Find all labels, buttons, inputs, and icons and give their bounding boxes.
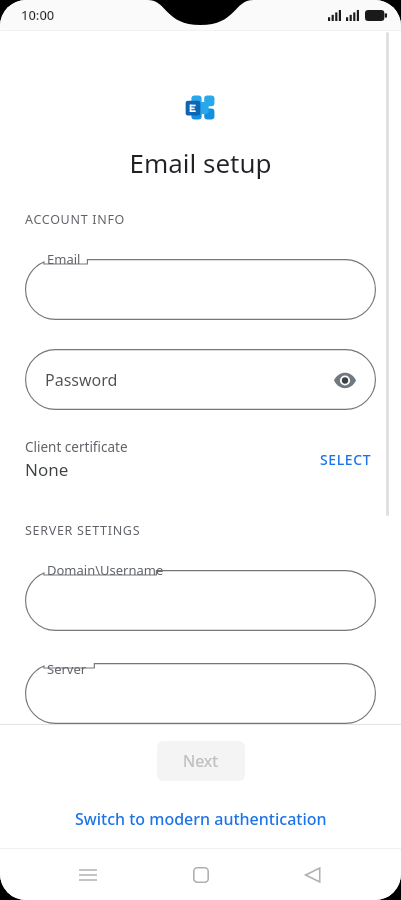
button[interactable]: Back [289, 851, 337, 899]
button[interactable]: Client certificate [25, 435, 376, 483]
staticText: ACCOUNT INFO [25, 211, 126, 228]
button[interactable]: Next [157, 741, 245, 781]
button[interactable]: Domain\Username [25, 561, 376, 631]
staticText: Client certificate [25, 438, 128, 456]
staticText: Email setup [0, 145, 401, 180]
staticText: Email [47, 250, 81, 268]
button[interactable]: Server [25, 660, 376, 724]
staticText: Next [183, 750, 219, 772]
staticText: Domain\Username [47, 561, 164, 579]
staticText: SERVER SETTINGS [25, 522, 141, 539]
staticText: 10:00 [21, 6, 55, 24]
button[interactable]: Show password [330, 365, 360, 395]
staticText: None [25, 458, 69, 481]
staticText: SELECT [320, 450, 372, 469]
button[interactable]: SELECT [316, 444, 376, 475]
staticText: Switch to modern authentication [75, 808, 327, 830]
button[interactable]: Recent apps [64, 851, 112, 899]
button[interactable]: Switch to modern authentication [63, 802, 339, 836]
button[interactable]: Email [25, 250, 376, 320]
button[interactable]: Password [25, 349, 376, 410]
button[interactable]: Home [177, 851, 225, 899]
staticText: Server [47, 660, 87, 678]
staticText: Password [45, 369, 118, 391]
